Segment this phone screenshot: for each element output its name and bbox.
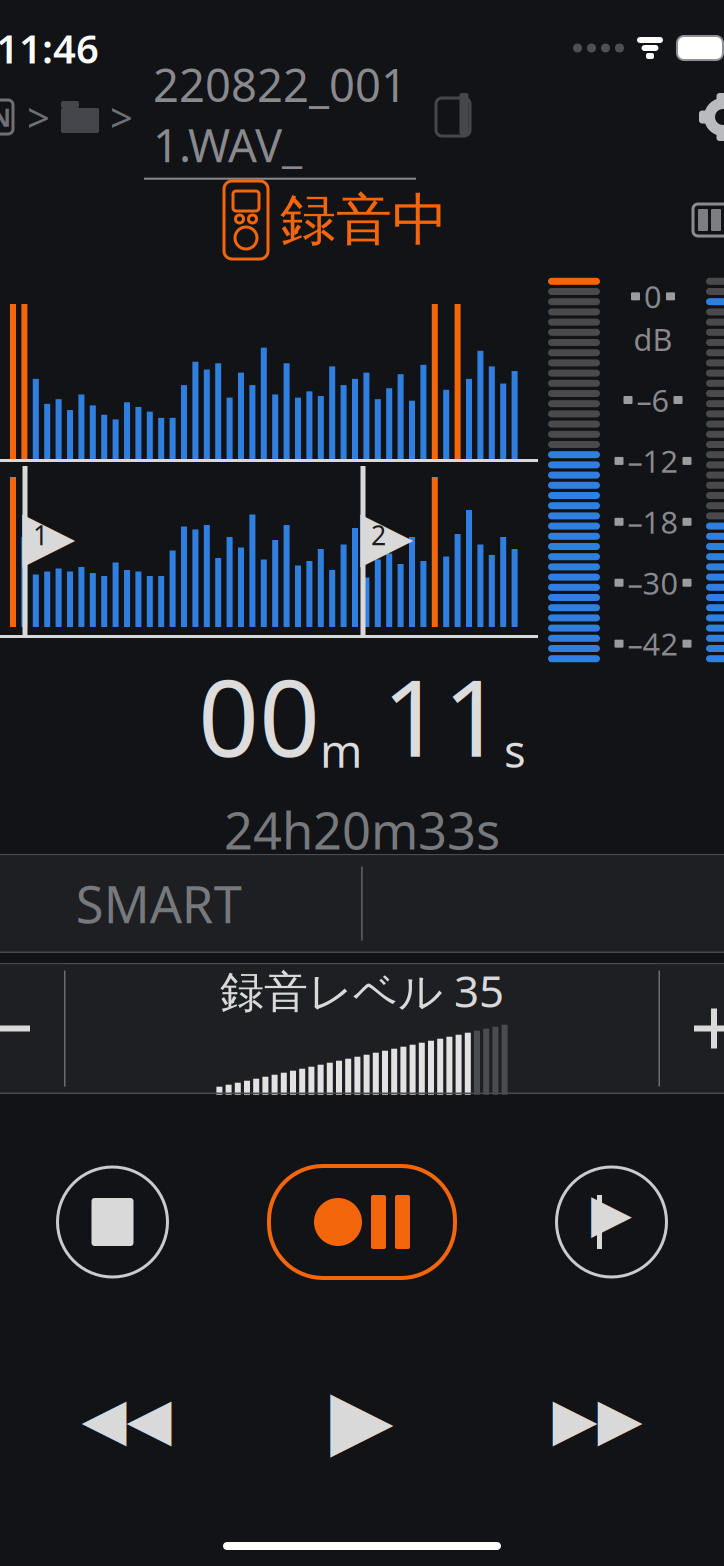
staticText: –42: [627, 623, 678, 664]
button[interactable]: Mark: [556, 1167, 666, 1277]
button[interactable]: Fast forward: [532, 1374, 662, 1464]
staticText: IN: [0, 100, 11, 134]
staticText: 11:46: [0, 21, 99, 74]
button[interactable]: Stop: [57, 1167, 167, 1277]
button[interactable]: Rename file: [430, 93, 476, 141]
staticText: 24h20m33s: [224, 796, 500, 863]
staticText: 1: [33, 517, 48, 553]
staticText: –30: [627, 562, 678, 603]
staticText: SMART: [76, 870, 242, 937]
staticText: >: [27, 90, 50, 143]
staticText: 11: [382, 644, 504, 786]
staticText: ▶: [360, 496, 413, 574]
staticText: ▶: [330, 1372, 394, 1466]
staticText: ▶: [22, 496, 75, 574]
staticText: 220822_0011.WAV_: [153, 54, 407, 175]
staticText: s: [504, 720, 526, 780]
button[interactable]: SMART: [0, 855, 361, 951]
button[interactable]: Record pause: [269, 1166, 455, 1278]
staticText: 2: [371, 517, 386, 553]
staticText: 録音レベル 35: [220, 961, 504, 1020]
button[interactable]: Increase recording level: [660, 964, 724, 1092]
staticText: 00: [198, 644, 320, 786]
staticText: –6: [636, 380, 669, 420]
staticText: 0: [644, 276, 662, 317]
button[interactable]: Input device: [0, 97, 16, 137]
button[interactable]: Play: [297, 1374, 427, 1464]
button[interactable]: Folder: [61, 100, 99, 133]
staticText: ◀◀: [81, 1386, 171, 1452]
staticText: ▶: [591, 1183, 632, 1243]
button[interactable]: 220822_0011.WAV_: [144, 54, 416, 180]
button[interactable]: Settings: [698, 92, 724, 142]
button[interactable]: Rewind: [61, 1374, 191, 1464]
staticText: –18: [627, 501, 678, 542]
staticText: >: [110, 90, 133, 143]
staticText: dB: [633, 319, 672, 359]
staticText: 録音中: [280, 186, 448, 254]
staticText: m: [320, 720, 362, 780]
button[interactable]: Decrease recording level: [0, 964, 64, 1092]
staticText: ▶▶: [552, 1386, 642, 1452]
staticText: –12: [627, 440, 678, 481]
